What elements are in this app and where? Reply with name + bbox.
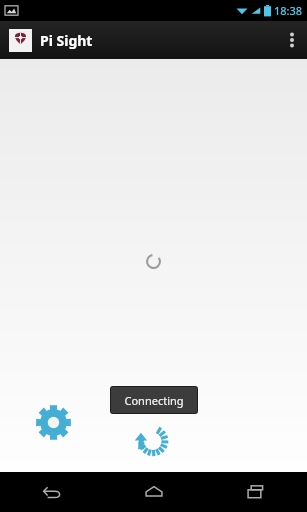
button[interactable]: Refresh <box>133 424 169 460</box>
button[interactable]: Recent apps <box>205 472 307 512</box>
button[interactable]: Back <box>0 472 103 512</box>
button[interactable]: Settings <box>35 404 72 441</box>
staticText: Connecting <box>124 393 184 408</box>
button[interactable]: More options <box>277 21 307 59</box>
button[interactable]: Home <box>103 472 205 512</box>
staticText: Pi Sight <box>40 31 93 50</box>
staticText: 18:38 <box>274 3 303 18</box>
